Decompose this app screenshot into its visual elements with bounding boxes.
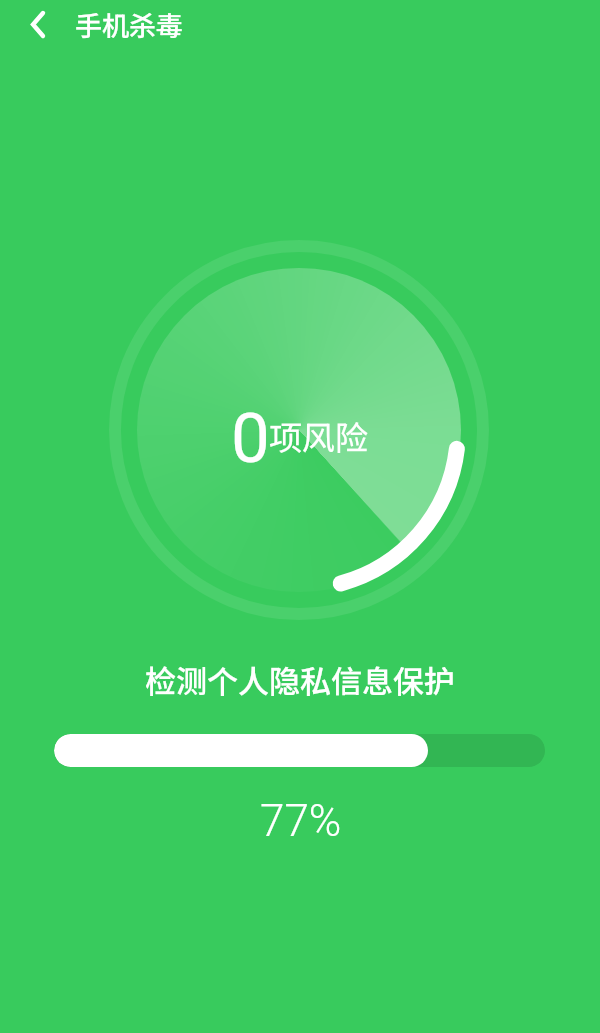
button[interactable]: Back	[2, 0, 74, 48]
staticText: 77%	[260, 795, 342, 847]
staticText: 手机杀毒	[75, 5, 183, 44]
staticText: 检测个人隐私信息保护	[145, 657, 455, 702]
staticText: 0	[231, 398, 270, 479]
staticText: 项风险	[269, 412, 368, 460]
button[interactable]: 手机杀毒	[75, 5, 183, 44]
